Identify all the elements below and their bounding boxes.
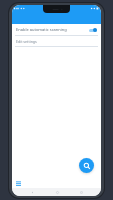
button[interactable]: Home bbox=[52, 188, 62, 196]
staticText: Enable automatic scanning bbox=[16, 27, 86, 32]
button[interactable]: Recents bbox=[76, 188, 86, 196]
staticText: Edit settings bbox=[16, 39, 37, 44]
button[interactable]: Edit settings bbox=[12, 36, 101, 46]
button[interactable]: Enable automatic scanning bbox=[12, 24, 101, 35]
button[interactable]: Scan bbox=[79, 158, 94, 173]
button[interactable]: Back bbox=[27, 188, 37, 196]
button[interactable]: Menu bbox=[15, 180, 22, 187]
button[interactable]: Toggle automatic scanning bbox=[88, 27, 97, 33]
